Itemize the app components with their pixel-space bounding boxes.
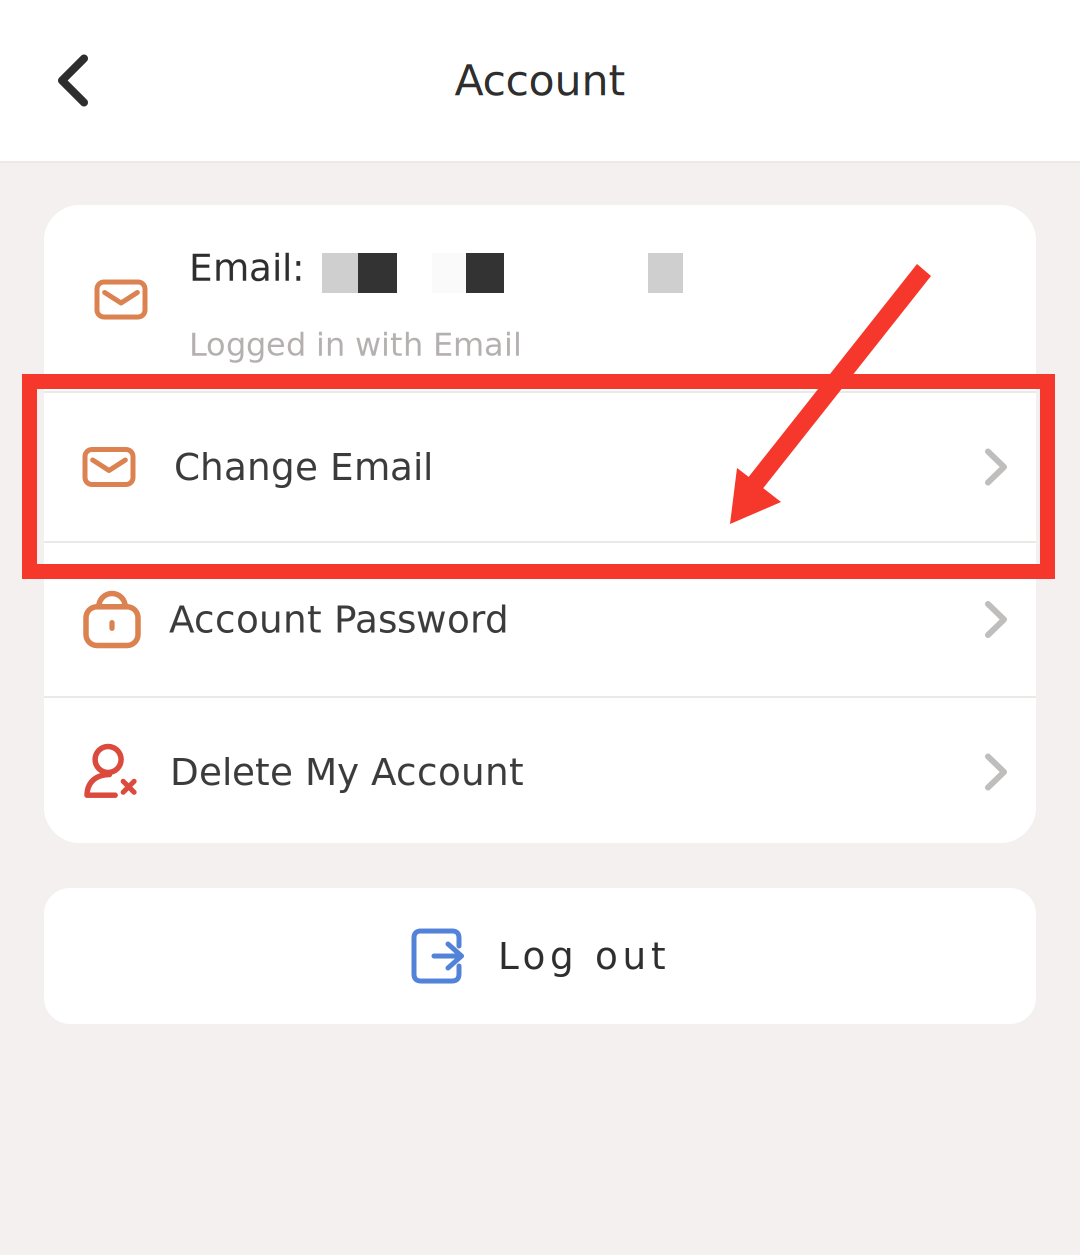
button[interactable]: Back: [18, 25, 128, 135]
staticText: Change Email: [174, 445, 433, 489]
staticText: Delete My Account: [170, 750, 524, 794]
staticText: Account Password: [169, 598, 509, 641]
staticText: Logged in with Email: [189, 326, 522, 363]
button[interactable]: Delete My Account: [44, 698, 1036, 846]
button[interactable]: Account Password: [44, 543, 1036, 696]
staticText: Email:: [189, 246, 305, 289]
staticText: Account: [454, 56, 625, 105]
button[interactable]: Log out: [44, 888, 1036, 1024]
staticText: Log out: [498, 934, 666, 978]
button[interactable]: Change Email: [44, 393, 1036, 541]
